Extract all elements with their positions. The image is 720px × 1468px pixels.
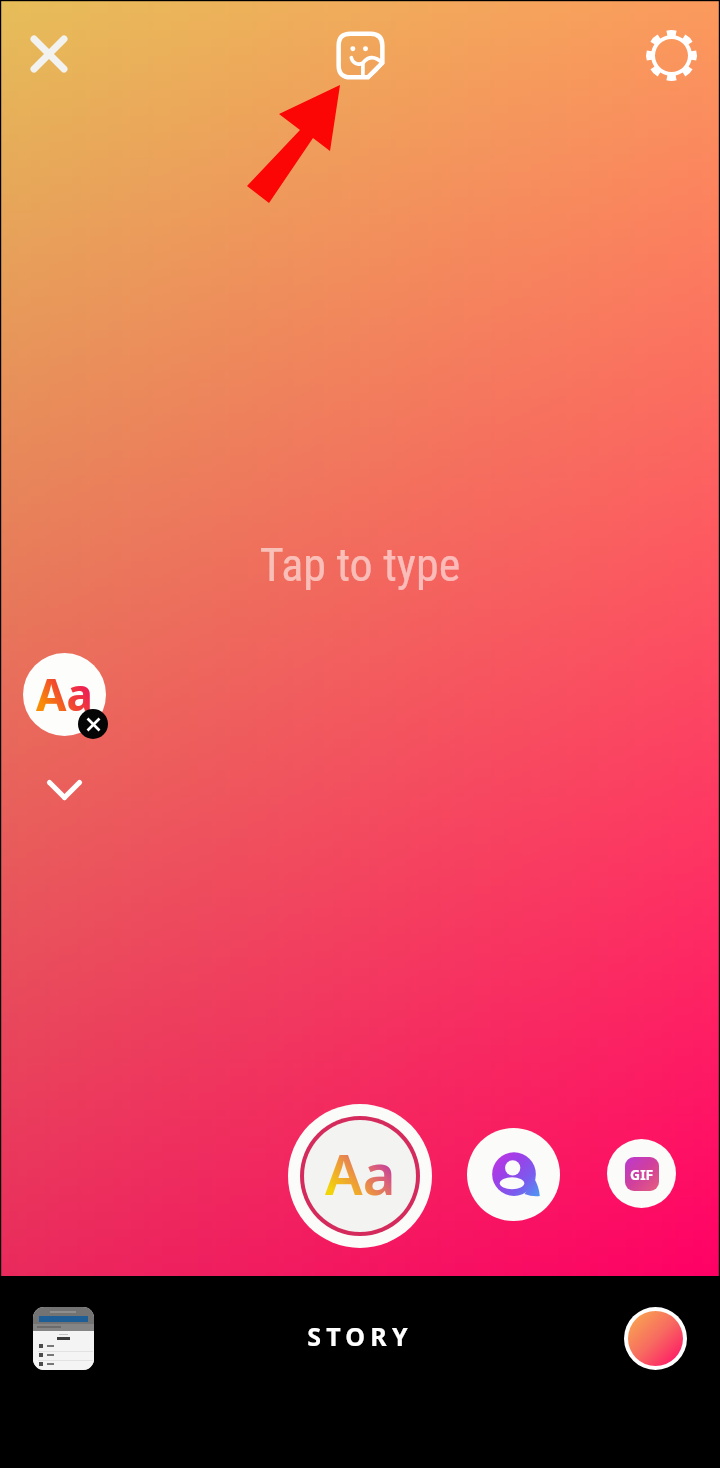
staticText: STORY (0, 1319, 720, 1353)
staticText: Tap to type (0, 538, 720, 592)
button[interactable]: Capture (624, 1307, 687, 1370)
button[interactable]: Text sticker (23, 653, 106, 736)
button[interactable]: Text tool (288, 1104, 432, 1248)
button[interactable]: Mention (467, 1128, 560, 1221)
button[interactable]: GIF (607, 1139, 676, 1208)
button[interactable]: Settings (639, 23, 703, 87)
button[interactable]: Close (17, 22, 81, 86)
staticText: GIF (630, 1165, 654, 1184)
staticText: Aa (36, 664, 93, 724)
staticText: Aa (325, 1135, 396, 1211)
button[interactable]: Remove sticker (78, 709, 108, 739)
button[interactable]: Collapse (29, 762, 100, 817)
button[interactable]: Stickers (328, 23, 392, 87)
button[interactable]: Gallery (33, 1307, 94, 1370)
